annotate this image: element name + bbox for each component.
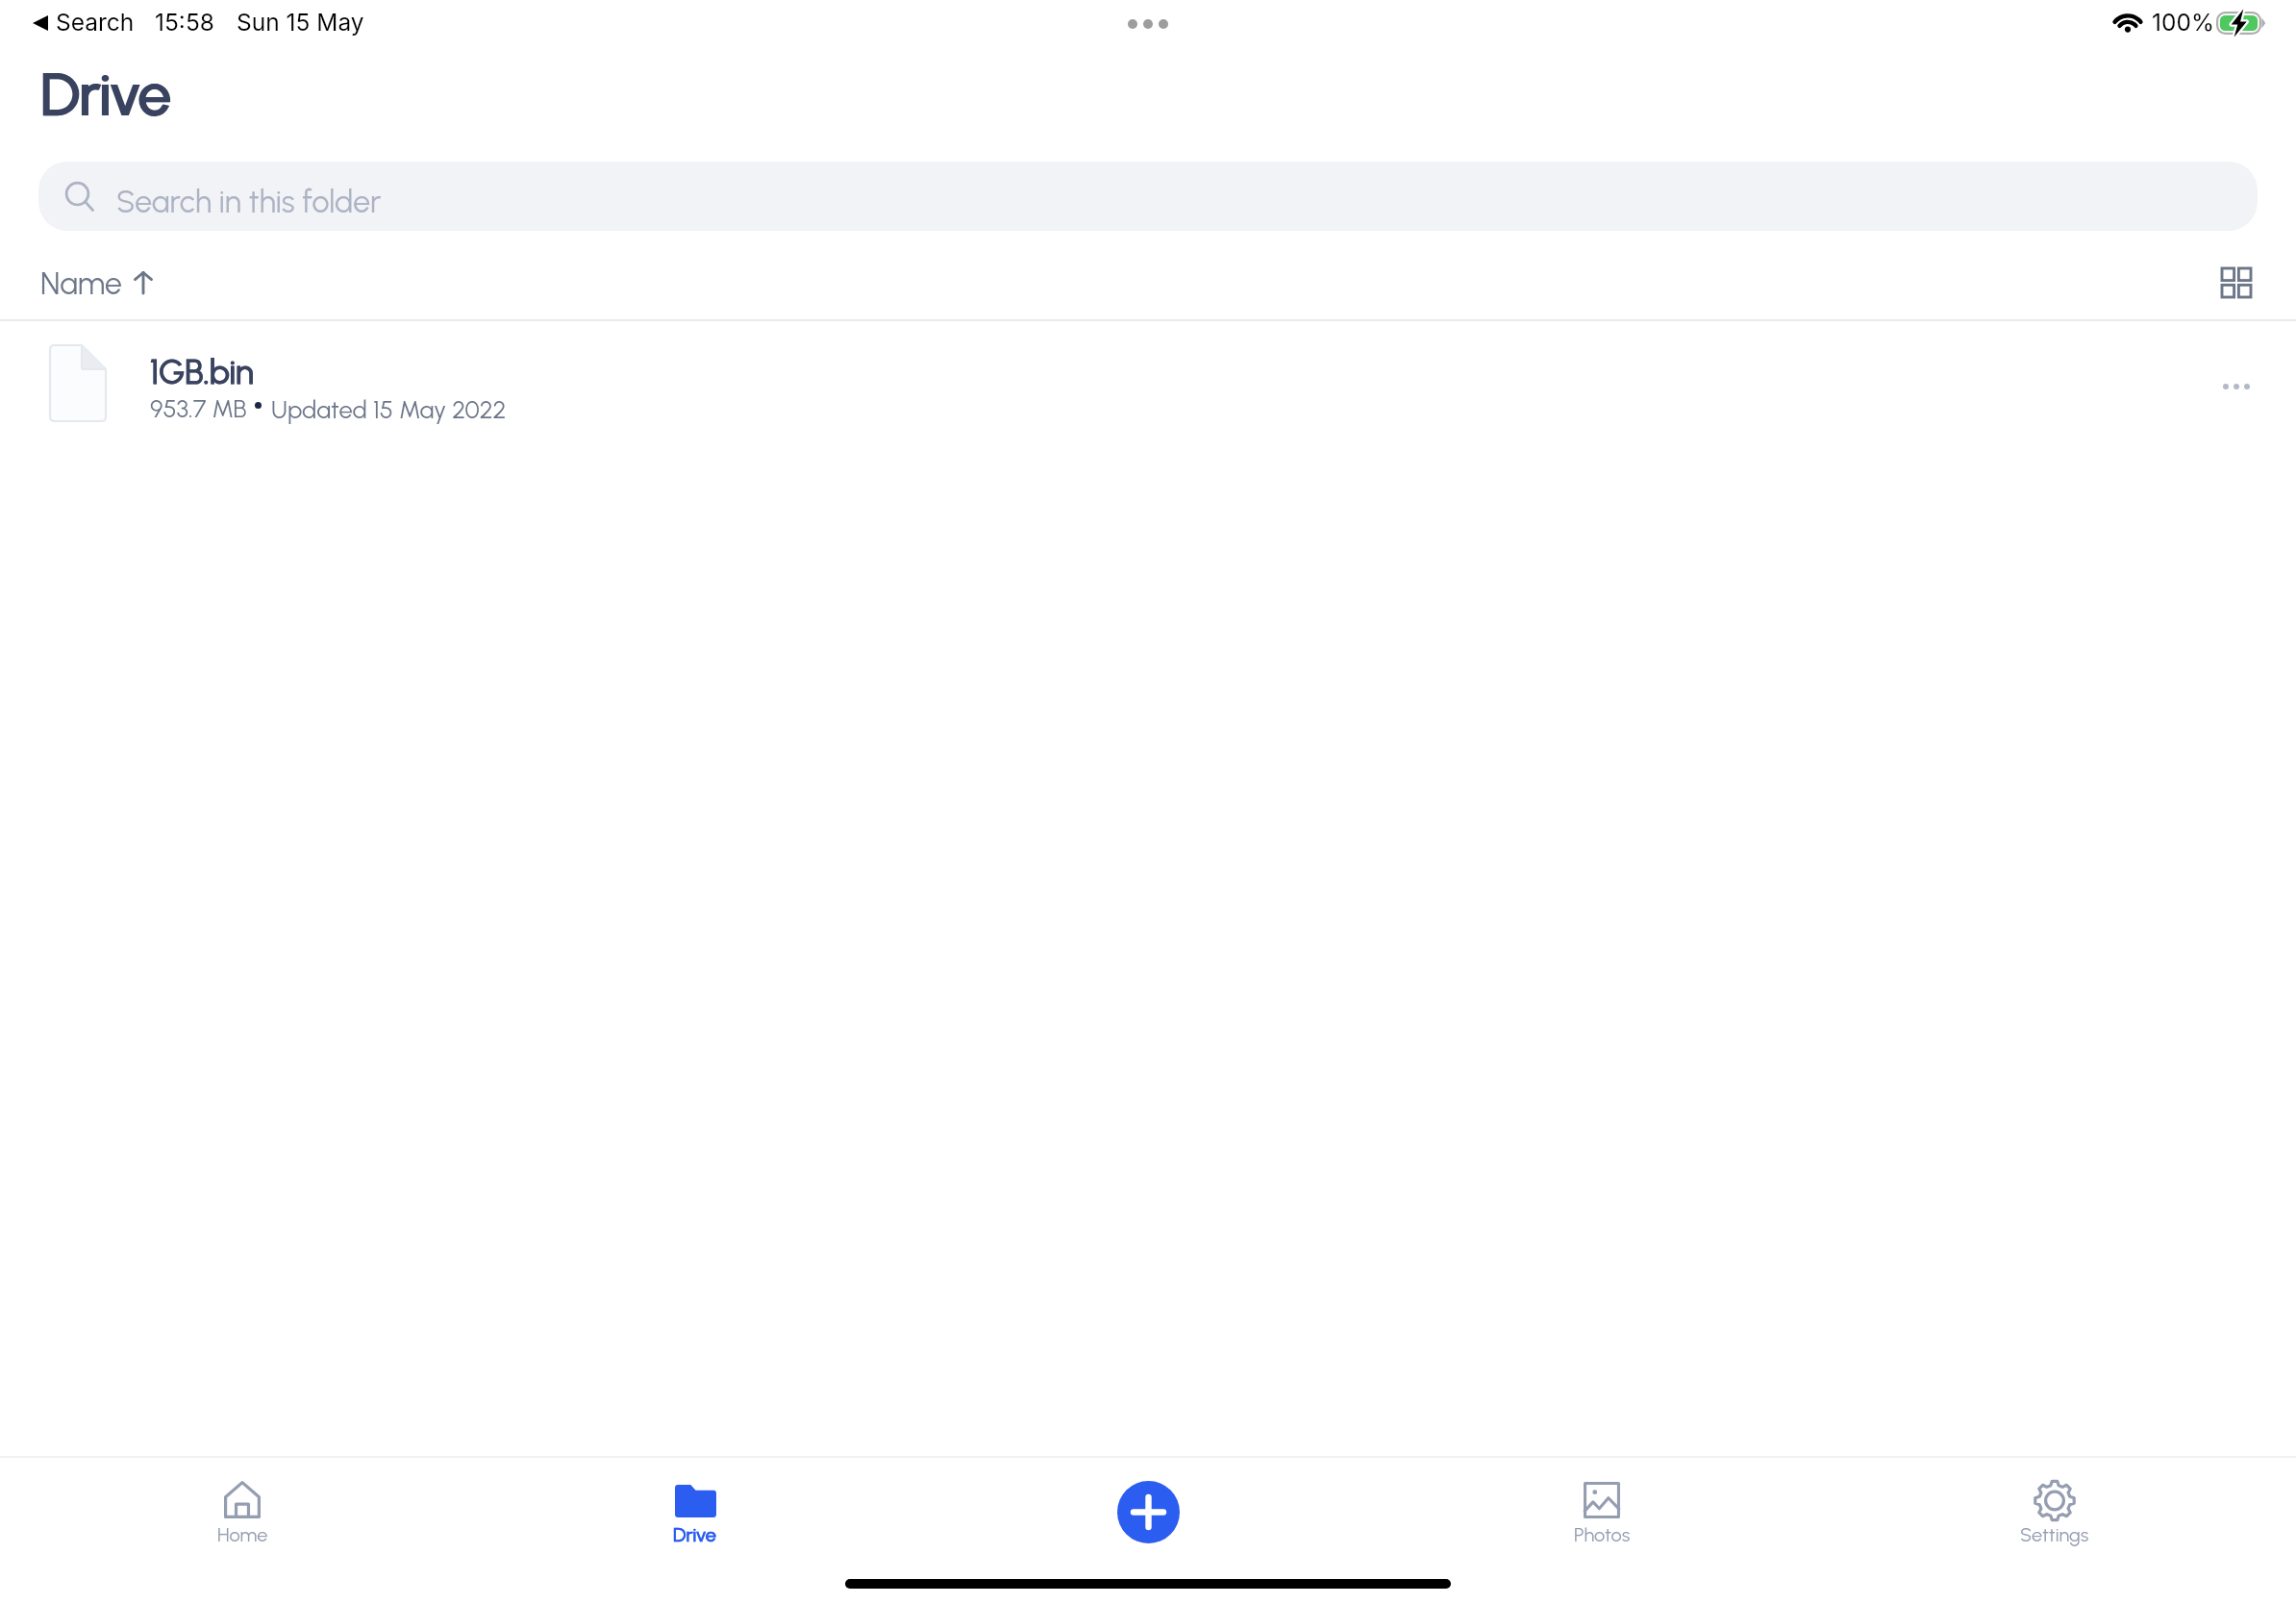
button[interactable]: 1GB.bin, 953.7 MB, updated 15 May 2022	[0, 324, 2296, 438]
staticText: 1GB.bin	[150, 352, 254, 392]
staticText: Drive	[673, 1523, 717, 1546]
staticText: 15:58	[155, 8, 214, 37]
staticText: 953.7 MB	[150, 394, 247, 424]
staticText: Sun 15 May	[237, 8, 364, 37]
staticText: Drive	[673, 1523, 717, 1546]
button[interactable]: Search in this folder	[38, 162, 2258, 231]
staticText: 100%	[2152, 8, 2214, 37]
staticText: Search	[56, 8, 135, 37]
button[interactable]: Drive	[623, 1466, 767, 1553]
staticText: Search in this folder	[116, 184, 382, 220]
staticText: Updated 15 May 2022	[271, 395, 507, 425]
button[interactable]: Add	[1117, 1481, 1180, 1543]
button[interactable]: Photos	[1530, 1466, 1674, 1553]
button[interactable]: More options	[2206, 356, 2267, 417]
button[interactable]: Grid view	[2206, 252, 2267, 313]
staticText: Drive	[40, 60, 171, 129]
button[interactable]: Sort by name, ascending	[29, 260, 173, 310]
staticText: 1GB.bin	[150, 352, 254, 392]
staticText: Drive	[41, 60, 172, 129]
button[interactable]: Settings	[1983, 1466, 2127, 1553]
staticText: Photos	[1574, 1523, 1631, 1546]
button[interactable]: Home	[170, 1466, 314, 1553]
staticText: Settings	[2020, 1523, 2089, 1546]
staticText: Name	[40, 265, 122, 302]
staticText: Home	[217, 1523, 268, 1546]
